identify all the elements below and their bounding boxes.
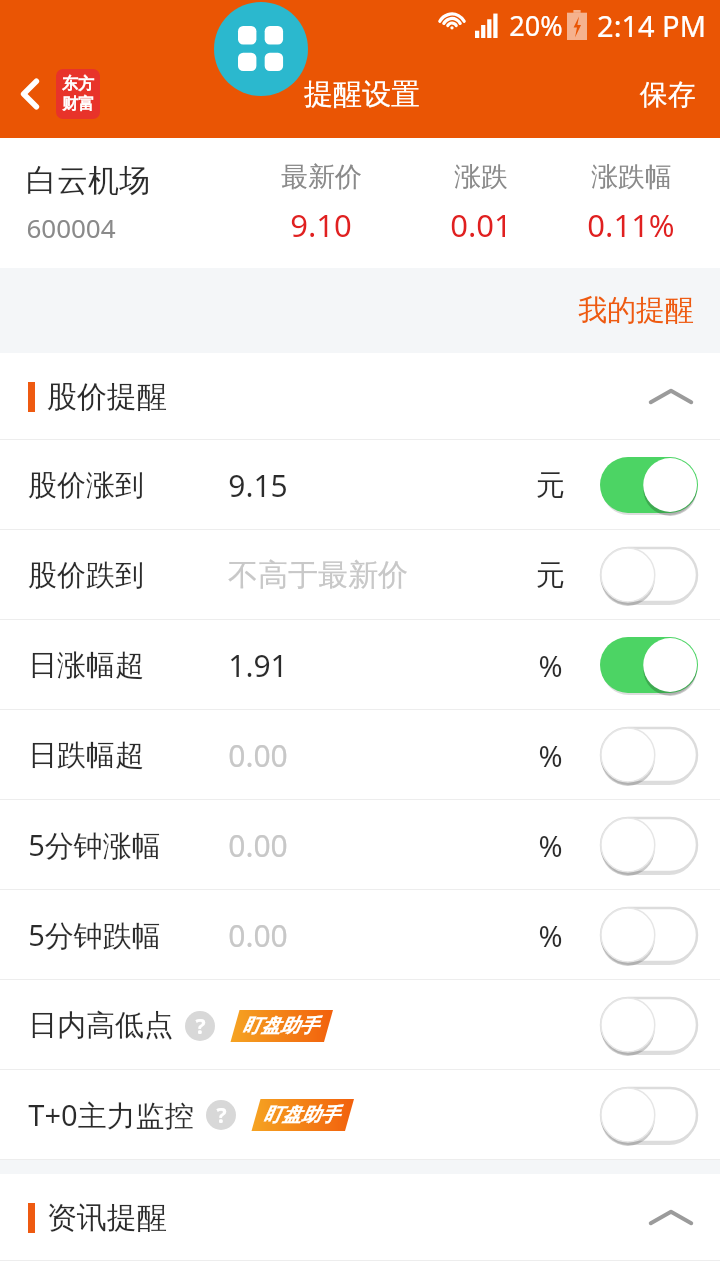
staticText: 600004 (26, 210, 116, 245)
button[interactable]: 开关 关 (600, 547, 698, 603)
staticText: 2:14 PM (597, 6, 706, 45)
staticText: ? (216, 1101, 227, 1130)
staticText: 最新价 (281, 160, 362, 194)
staticText: 东方 (62, 74, 94, 94)
button[interactable]: 帮助 (185, 1011, 215, 1041)
button[interactable]: 股价涨到 (0, 440, 720, 530)
staticText: 0.00 (228, 735, 288, 776)
other: 折叠 (648, 384, 694, 410)
staticText: 股价提醒 (47, 378, 167, 416)
staticText: % (538, 916, 563, 955)
button[interactable]: T+0主力监控 (0, 1070, 720, 1160)
staticText: % (538, 826, 563, 865)
staticText: ? (195, 1012, 206, 1041)
staticText: 股价跌到 (28, 557, 144, 594)
staticText: T+0主力监控 (28, 1095, 194, 1135)
staticText: 元 (536, 467, 565, 504)
button[interactable]: 股价跌到 (0, 530, 720, 620)
button[interactable]: 资讯提醒 (0, 1174, 720, 1261)
staticText: 日跌幅超 (28, 737, 144, 774)
button[interactable]: 开关 关 (600, 727, 698, 783)
staticText: 财富 (62, 94, 94, 114)
staticText: 元 (536, 557, 565, 594)
button[interactable]: 日跌幅超 (0, 710, 720, 800)
button[interactable]: 返回 东方财富 (0, 59, 108, 129)
staticText: 0.00 (228, 825, 288, 866)
staticText: 9.15 (228, 465, 288, 506)
staticText: 盯盘助手 (263, 1103, 339, 1127)
staticText: 5分钟涨幅 (28, 825, 161, 865)
button[interactable]: 5分钟跌幅 (0, 890, 720, 980)
staticText: 我的提醒 (578, 292, 694, 329)
button[interactable]: 开关 开 (600, 637, 698, 693)
button[interactable]: 开关 关 (600, 817, 698, 873)
staticText: % (538, 736, 563, 775)
staticText: 保存 (640, 77, 696, 112)
staticText: 提醒设置 (304, 76, 420, 113)
staticText: 资讯提醒 (47, 1199, 167, 1237)
button[interactable]: 开关 关 (600, 997, 698, 1053)
button[interactable]: 开关 开 (600, 457, 698, 513)
staticText: 日涨幅超 (28, 647, 144, 684)
staticText: 0.00 (228, 915, 288, 956)
button[interactable]: 我的提醒 (552, 276, 720, 345)
button[interactable]: 股价提醒 (0, 353, 720, 440)
staticText: 0.11% (587, 204, 675, 246)
staticText: 涨跌幅 (591, 160, 672, 194)
staticText: 1.91 (228, 645, 288, 686)
button[interactable]: 保存 (616, 63, 720, 126)
staticText: 9.10 (290, 204, 352, 246)
button[interactable]: 开关 关 (600, 907, 698, 963)
button[interactable]: 开关 关 (600, 1087, 698, 1143)
staticText: 股价涨到 (28, 467, 144, 504)
staticText: 0.01 (450, 204, 512, 246)
button[interactable]: 辅助菜单 (214, 2, 308, 96)
staticText: % (538, 646, 563, 685)
button[interactable]: 5分钟涨幅 (0, 800, 720, 890)
staticText: 不高于最新价 (228, 556, 408, 594)
staticText: 5分钟跌幅 (28, 915, 161, 955)
staticText: 涨跌 (454, 160, 508, 194)
staticText: 盯盘助手 (242, 1014, 318, 1038)
button[interactable]: 日内高低点 (0, 980, 720, 1070)
other: 折叠 (648, 1205, 694, 1231)
button[interactable]: 帮助 (206, 1100, 236, 1130)
button[interactable]: 日涨幅超 (0, 620, 720, 710)
staticText: 日内高低点 (28, 1007, 173, 1044)
staticText: 白云机场 (26, 161, 150, 200)
staticText: 20% (509, 7, 563, 44)
